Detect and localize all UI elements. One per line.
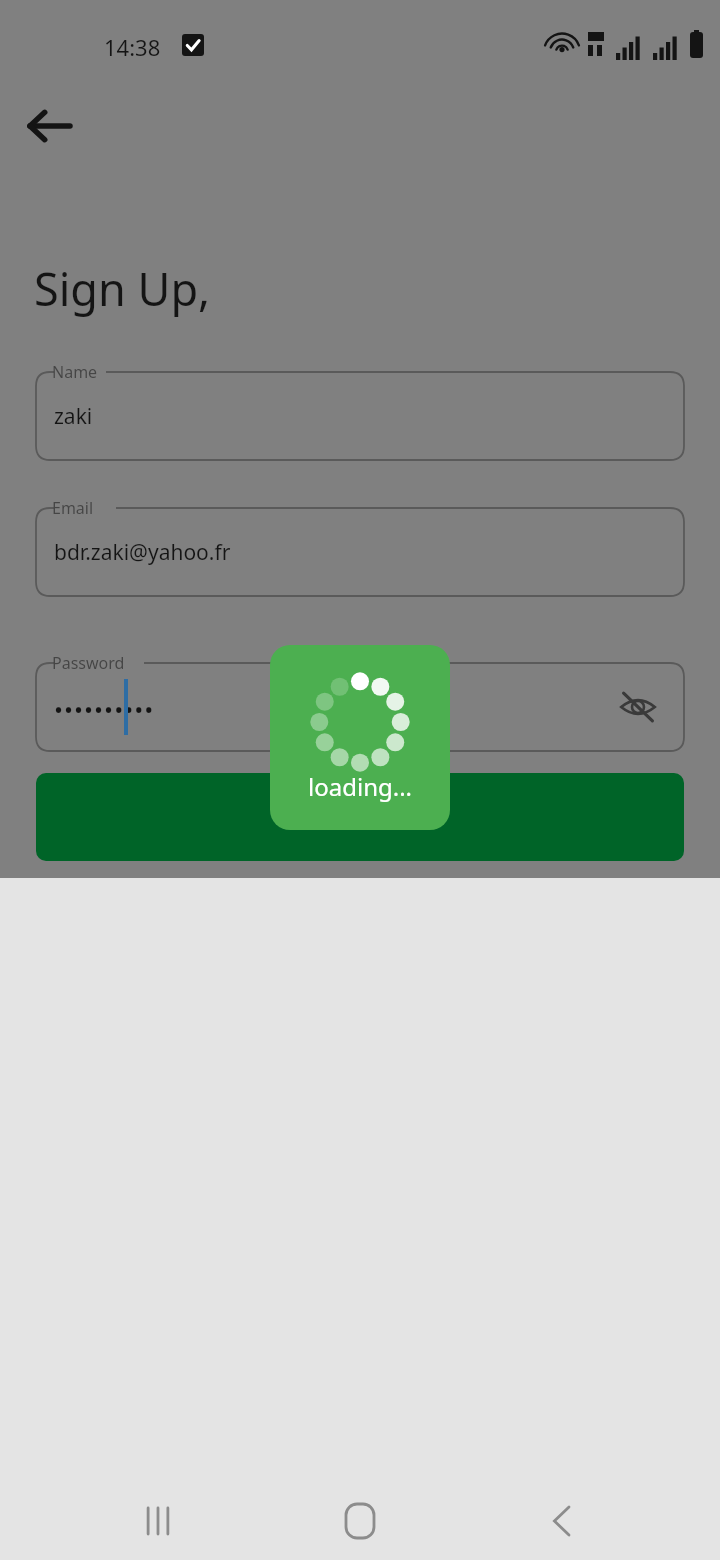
staticText: Sign Up, <box>34 258 211 319</box>
staticText: Password <box>52 652 125 674</box>
button[interactable]: Password <box>36 663 684 751</box>
staticText: 14:38 <box>104 32 161 62</box>
button[interactable]: Toggle password visibility <box>608 677 668 737</box>
staticText: Email <box>52 497 94 519</box>
button[interactable]: Back <box>522 1491 602 1551</box>
button[interactable]: Name <box>36 372 684 460</box>
button[interactable]: Home <box>320 1491 400 1551</box>
button[interactable]: Back <box>20 96 80 156</box>
button[interactable]: Sign Up <box>36 773 684 861</box>
staticText: loading... <box>308 770 413 803</box>
staticText: Sign Up <box>322 803 399 832</box>
staticText: Name <box>52 361 98 383</box>
button[interactable]: Recent apps <box>118 1491 198 1551</box>
button[interactable]: Email <box>36 508 684 596</box>
staticText: •••••••••• <box>54 693 155 726</box>
staticText: zaki <box>54 402 93 431</box>
staticText: bdr.zaki@yahoo.fr <box>54 538 231 567</box>
